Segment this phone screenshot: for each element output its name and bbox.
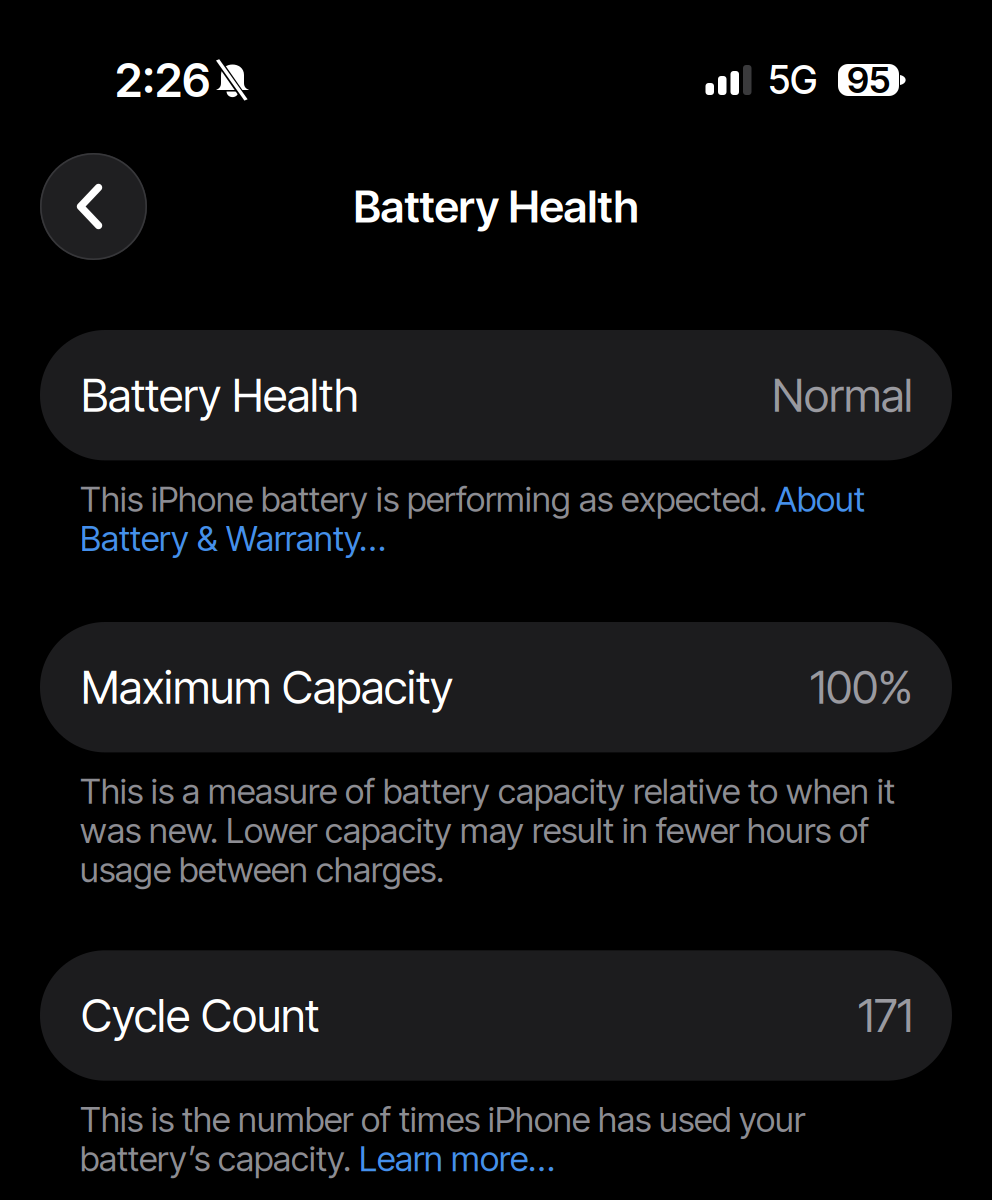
button[interactable]: Learn more… [359,1138,555,1180]
button[interactable]: About [775,478,865,520]
staticText: Cycle Count [81,988,319,1043]
button[interactable]: Maximum Capacity [40,622,952,752]
staticText: This is the number of times iPhone has u… [80,1098,805,1140]
staticText: This iPhone battery is performing as exp… [80,478,775,520]
button[interactable]: Battery & Warranty… [80,517,386,559]
staticText: About [775,478,865,520]
staticText: Battery & Warranty… [80,517,386,559]
staticText: 100% [810,660,913,715]
staticText: usage between charges. [80,849,444,891]
button[interactable]: Back [40,153,147,260]
staticText: Learn more… [359,1138,555,1180]
staticText: was new. Lower capacity may result in fe… [80,809,869,851]
button[interactable]: Battery Health [40,330,952,460]
staticText: Battery Health [81,368,359,423]
staticText: 5G [768,57,817,103]
staticText: battery’s capacity. [80,1138,359,1180]
staticText: Maximum Capacity [81,660,453,715]
staticText: This is a measure of battery capacity re… [80,770,895,812]
staticText: 95 [847,58,890,102]
staticText: 2:26 [115,52,210,108]
staticText: Battery Health [353,180,638,233]
button[interactable]: Cycle Count [40,950,952,1081]
staticText: Normal [772,368,913,423]
staticText: 171 [858,988,913,1043]
